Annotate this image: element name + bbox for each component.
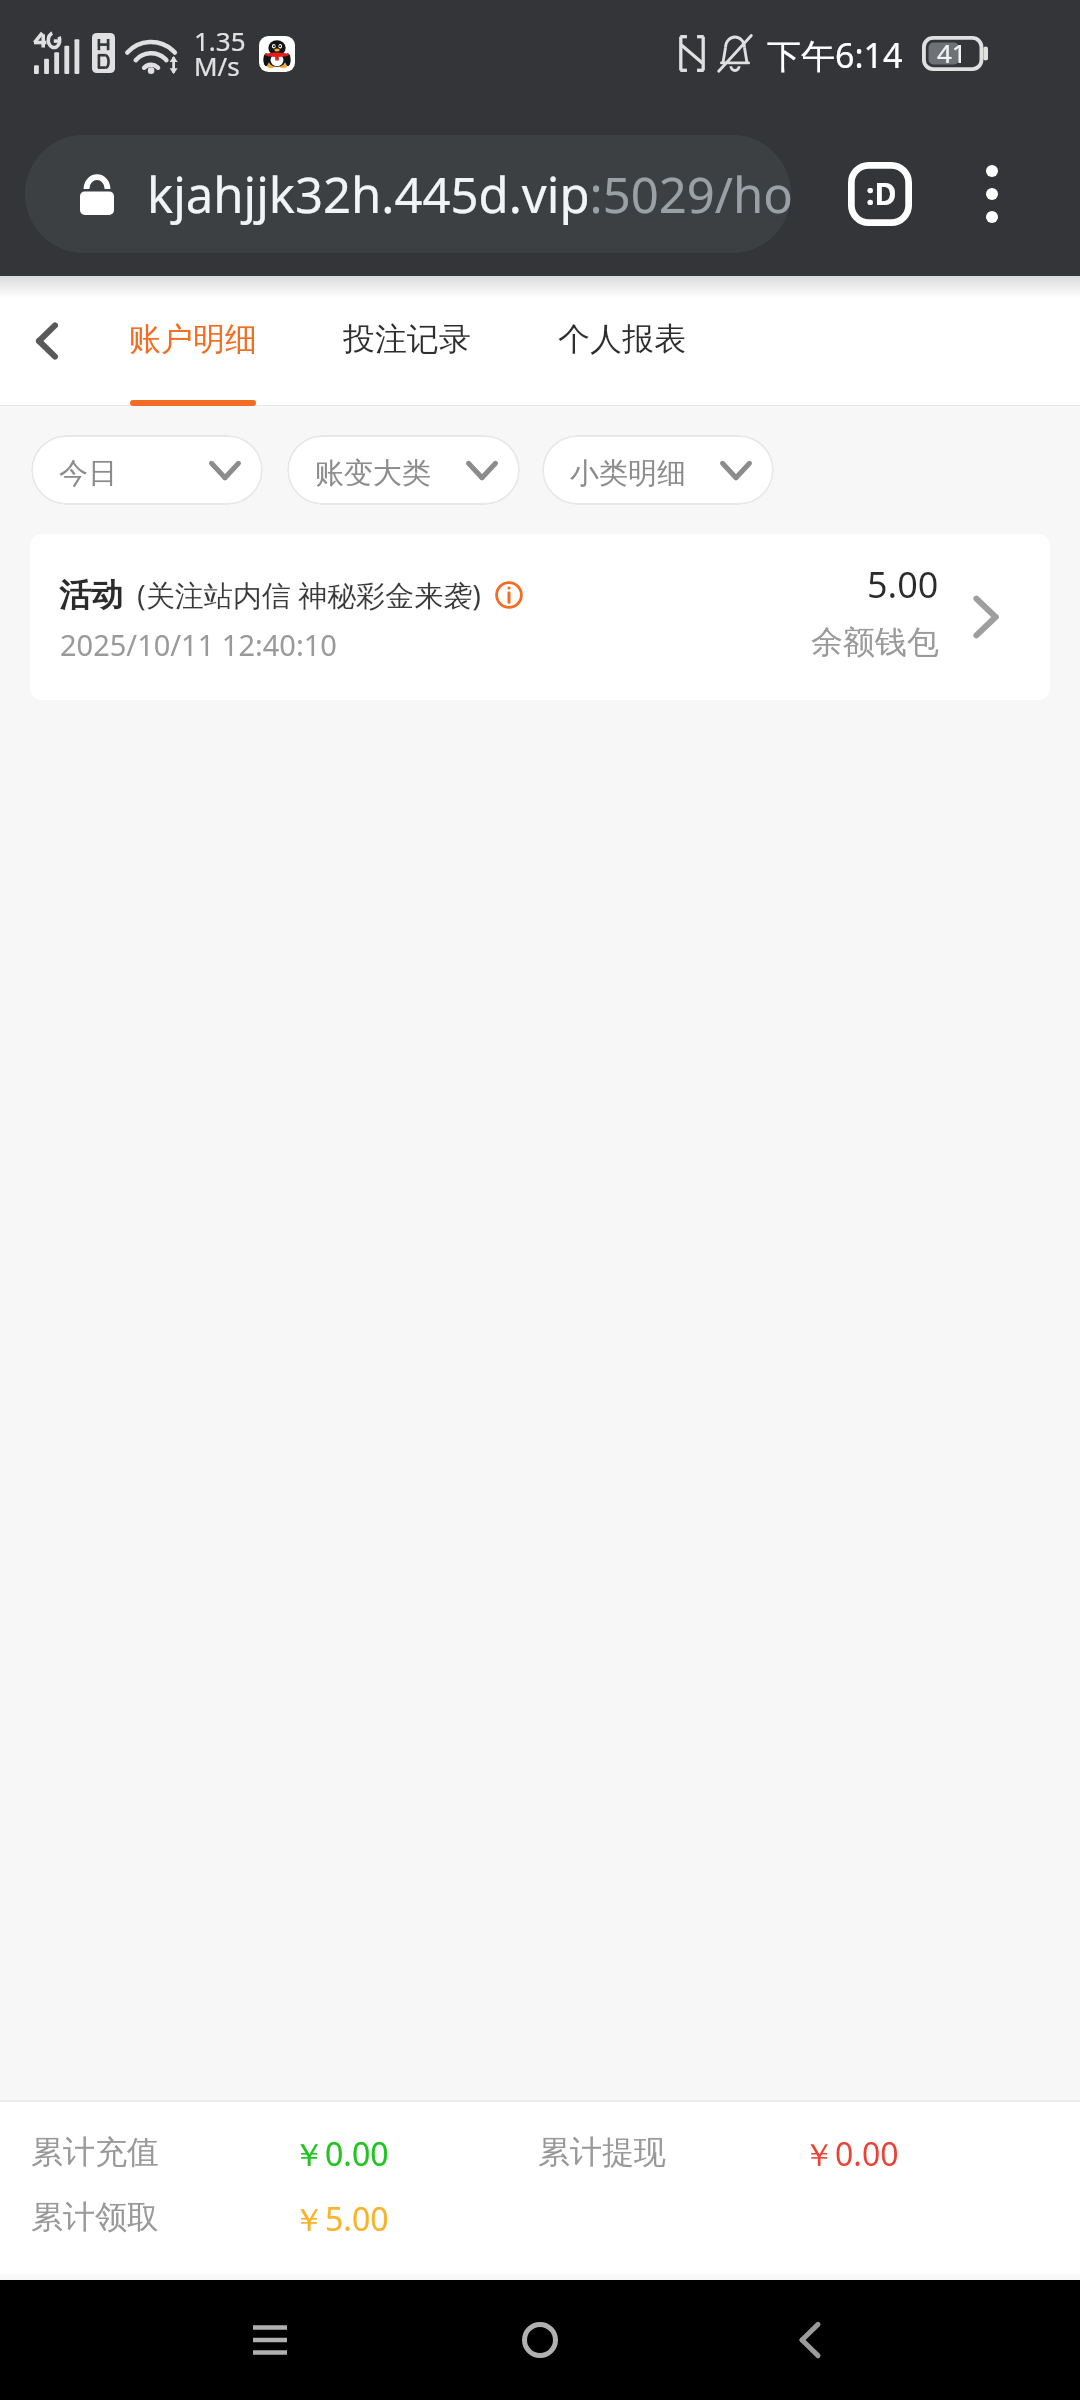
staticText: 累计领取 — [31, 2197, 159, 2237]
staticText: 个人报表 — [558, 319, 686, 359]
button[interactable]: 小类明细 — [542, 435, 774, 505]
staticText: 41 — [937, 35, 967, 70]
button[interactable]: More options — [942, 144, 1042, 244]
staticText: 累计提现 — [538, 2132, 666, 2172]
staticText: ￥5.00 — [293, 2197, 389, 2241]
staticText: 账户明细 — [129, 319, 257, 359]
staticText: 小类明细 — [570, 455, 686, 492]
staticText: 2025/10/11 12:40:10 — [60, 625, 337, 664]
staticText: 累计充值 — [31, 2132, 159, 2172]
button[interactable]: 投注记录 — [343, 276, 471, 376]
button[interactable]: 账户明细 — [129, 276, 257, 376]
button[interactable]: 个人报表 — [558, 276, 686, 376]
staticText: M/s — [194, 48, 240, 83]
staticText: ￥0.00 — [803, 2132, 899, 2176]
staticText: 今日 — [59, 455, 117, 492]
button[interactable]: 活动 — [30, 534, 1050, 700]
staticText: :D — [866, 173, 897, 214]
staticText: 活动 — [59, 575, 123, 615]
staticText: 1.35 — [194, 23, 246, 58]
staticText: ￥0.00 — [293, 2132, 389, 2176]
staticText: 账变大类 — [315, 455, 431, 492]
button[interactable]: Back — [1, 276, 91, 366]
staticText: 5.00 — [867, 560, 939, 609]
button[interactable]: Home — [485, 2285, 595, 2395]
button[interactable]: 今日 — [31, 435, 263, 505]
staticText: kjahjjk32h.445d.vip:5029/ho — [147, 161, 791, 228]
button[interactable]: 账变大类 — [287, 435, 520, 505]
button[interactable]: Address bar — [25, 135, 791, 253]
button[interactable]: Tabs — [830, 144, 930, 244]
button[interactable]: Back — [755, 2285, 865, 2395]
staticText: 下午6:14 — [767, 32, 903, 78]
staticText: 投注记录 — [343, 319, 471, 359]
button[interactable]: Recent apps — [215, 2285, 325, 2395]
staticText: (关注站内信 神秘彩金来袭) — [137, 575, 481, 615]
staticText: 余额钱包 — [811, 622, 939, 662]
